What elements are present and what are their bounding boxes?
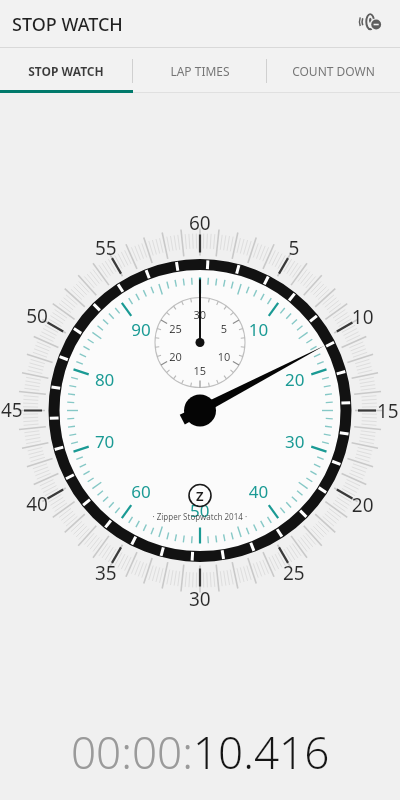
button[interactable]: Mute sound [352, 4, 392, 44]
staticText: 10.416 [193, 722, 330, 782]
button[interactable]: STOP WATCH [0, 48, 132, 93]
staticText: STOP WATCH [28, 63, 104, 79]
staticText: STOP WATCH [12, 12, 123, 37]
button[interactable]: COUNT DOWN [267, 48, 400, 93]
staticText: LAP TIMES [170, 63, 230, 79]
staticText: 00:00: [71, 722, 193, 782]
staticText: COUNT DOWN [292, 63, 375, 79]
button[interactable]: LAP TIMES [133, 48, 266, 93]
